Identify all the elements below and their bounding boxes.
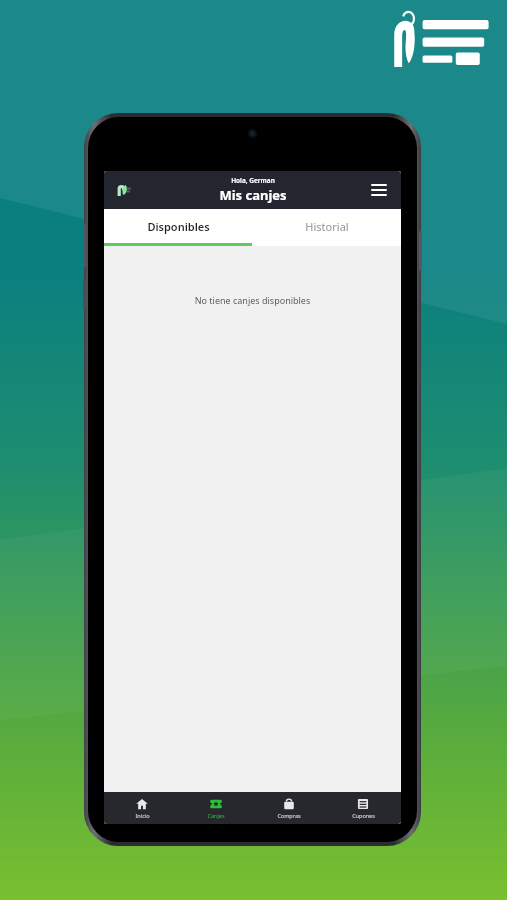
other: Ferrer bbox=[116, 184, 132, 196]
staticText: Inicio bbox=[135, 812, 150, 819]
staticText: No tiene canjes disponibles bbox=[104, 294, 401, 306]
staticText: Cupones bbox=[352, 812, 375, 819]
staticText: Hola, German bbox=[231, 176, 275, 185]
other: Ferrer cerca de ti bbox=[383, 10, 493, 72]
button[interactable]: Cupones bbox=[328, 792, 398, 824]
staticText: Disponibles bbox=[147, 219, 210, 234]
button[interactable]: Disponibles bbox=[104, 209, 252, 243]
staticText: Canjes bbox=[207, 812, 225, 819]
staticText: Historial bbox=[305, 219, 349, 234]
staticText: Compras bbox=[277, 812, 301, 819]
button[interactable]: Compras bbox=[254, 792, 324, 824]
button[interactable]: Historial bbox=[252, 209, 401, 243]
staticText: Mis canjes bbox=[219, 186, 287, 204]
button[interactable]: Menu bbox=[367, 178, 391, 202]
button[interactable]: Canjes bbox=[181, 792, 251, 824]
button[interactable]: Inicio bbox=[107, 792, 177, 824]
